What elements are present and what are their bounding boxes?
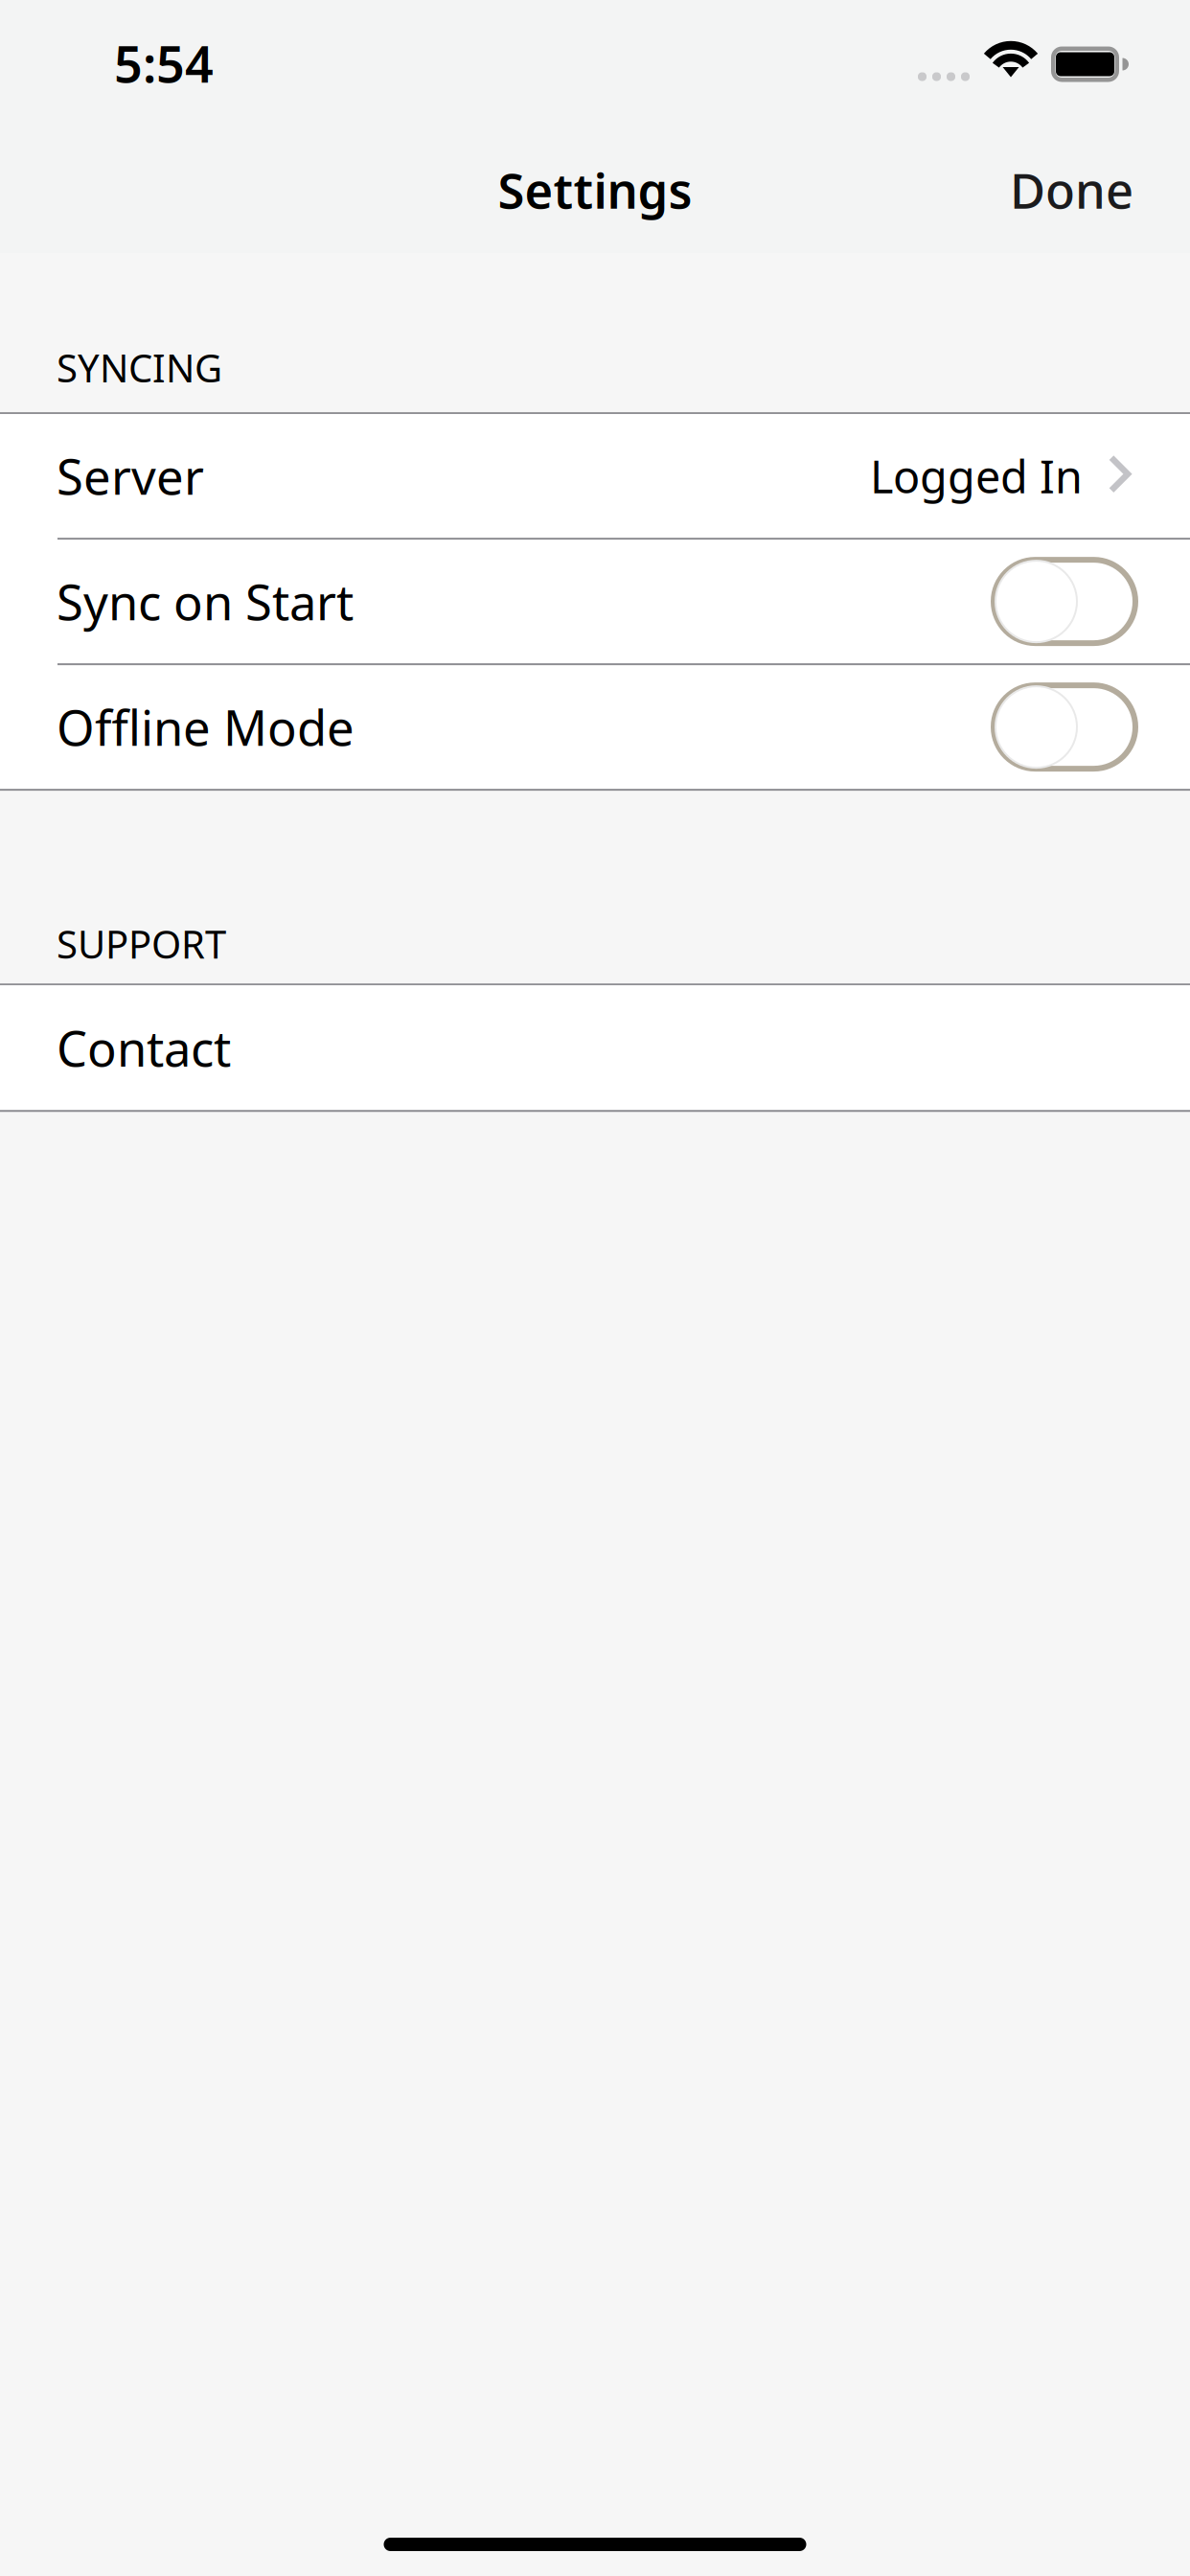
staticText: Done [1010, 158, 1133, 222]
staticText: Logged In [870, 446, 1083, 506]
button[interactable]: Contact [0, 985, 1190, 1110]
staticText: Server [57, 444, 204, 508]
staticText: Offline Mode [57, 695, 355, 759]
staticText: Sync on Start [57, 569, 354, 634]
staticText: 5:54 [114, 30, 214, 96]
button[interactable]: Done [987, 138, 1156, 241]
button[interactable]: Server [0, 414, 1190, 538]
staticText: Settings [498, 158, 692, 222]
button[interactable]: Sync on Start [991, 557, 1138, 646]
staticText: SYNCING [57, 342, 222, 393]
staticText: Contact [57, 1015, 231, 1080]
staticText: SUPPORT [57, 918, 226, 969]
button[interactable]: Offline Mode [991, 682, 1138, 772]
